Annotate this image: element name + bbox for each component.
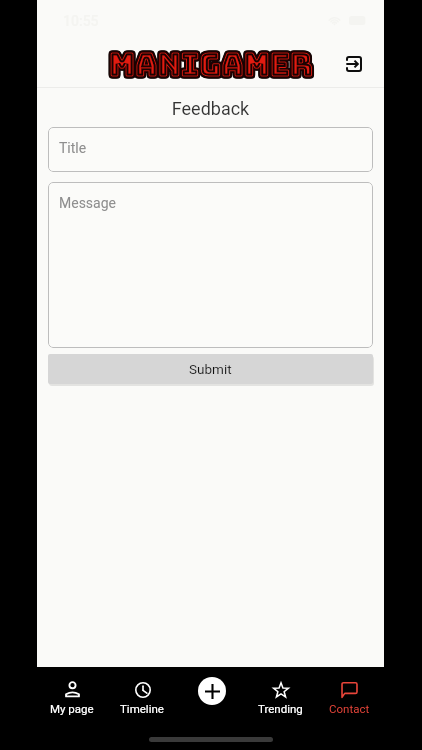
staticText: MANIGAMER <box>110 46 314 87</box>
staticText: My page <box>50 702 94 715</box>
button[interactable]: My page <box>37 675 107 727</box>
button[interactable]: Message <box>48 182 373 348</box>
staticText: MANIGAMER <box>108 45 312 86</box>
staticText: Contact <box>329 702 370 715</box>
staticText: Trending <box>258 702 303 715</box>
staticText: MANIGAMER <box>108 45 312 86</box>
staticText: Timeline <box>120 702 164 715</box>
staticText: MANIGAMER <box>110 46 314 87</box>
staticText: MANIGAMER <box>110 45 314 86</box>
staticText: MANIGAMER <box>108 44 312 85</box>
staticText: MANIGAMER <box>110 44 314 85</box>
staticText: MANIGAMER <box>110 45 314 86</box>
staticText: MANIGAMER <box>108 44 312 85</box>
button[interactable]: Add <box>198 677 226 705</box>
button[interactable]: Title <box>48 127 373 172</box>
button[interactable]: Timeline <box>107 675 177 727</box>
staticText: MANIGAMER <box>109 44 313 85</box>
staticText: MANIGAMER <box>109 45 313 86</box>
staticText: MANIGAMER <box>109 46 313 87</box>
staticText: Message <box>59 195 116 211</box>
staticText: MANIGAMER <box>109 46 313 87</box>
staticText: MANIGAMER <box>109 44 313 85</box>
staticText: Title <box>59 140 87 156</box>
staticText: Submit <box>189 361 232 377</box>
staticText: MANIGAMER <box>110 44 314 85</box>
staticText: MANIGAMER <box>108 46 312 87</box>
staticText: MANIGAMER <box>109 45 313 86</box>
button[interactable]: Submit <box>48 354 373 384</box>
staticText: Feedback <box>48 98 373 119</box>
button[interactable]: Login <box>338 48 370 80</box>
staticText: MANIGAMER <box>108 46 312 87</box>
button[interactable]: Contact <box>315 675 384 727</box>
button[interactable]: Trending <box>246 675 315 727</box>
